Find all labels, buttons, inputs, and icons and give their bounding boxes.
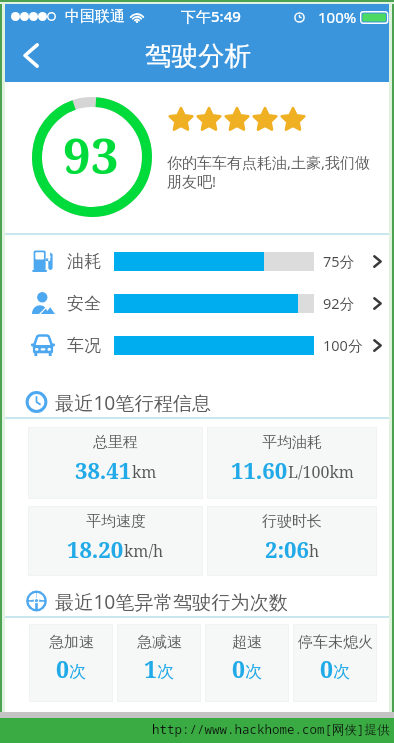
staticText: 最近10笔行程信息 — [55, 389, 212, 415]
staticText: 0 — [320, 653, 333, 684]
staticText: 100% — [318, 7, 357, 27]
staticText: 38.41 — [75, 455, 132, 485]
staticText: 100分 — [323, 335, 363, 355]
button[interactable]: 平均油耗 — [207, 427, 377, 499]
button[interactable]: 安全 — [5, 282, 389, 324]
staticText: 1 — [144, 653, 157, 684]
staticText: 停车未熄火 — [298, 633, 373, 652]
staticText: 平均速度 — [86, 512, 146, 531]
staticText: 次 — [245, 661, 262, 682]
staticText: 急加速 — [49, 633, 94, 652]
staticText: 92分 — [323, 293, 355, 313]
staticText: 75分 — [323, 251, 355, 271]
staticText: 2:06 — [265, 534, 309, 564]
staticText: 急减速 — [137, 633, 182, 652]
staticText: 0 — [56, 653, 69, 684]
staticText: 行驶时长 — [262, 512, 322, 531]
staticText: 你的车车有点耗油,土豪,我们做朋友吧! — [167, 152, 385, 192]
staticText: 次 — [333, 661, 350, 682]
button[interactable]: 油耗 — [5, 240, 389, 282]
staticText: 车况 — [67, 335, 101, 356]
staticText: 总里程 — [93, 433, 138, 452]
staticText: km — [132, 461, 157, 483]
staticText: http://www.hackhome.com[网侠]提供 — [152, 721, 390, 738]
staticText: 驾驶分析 — [145, 39, 251, 72]
button[interactable]: 停车未熄火 — [293, 624, 377, 702]
staticText: 油耗 — [67, 251, 101, 272]
button[interactable]: 行驶时长 — [207, 506, 377, 576]
button[interactable]: 急减速 — [117, 624, 201, 702]
staticText: 安全 — [67, 293, 101, 314]
staticText: 18.20 — [67, 534, 124, 564]
staticText: 次 — [69, 661, 86, 682]
button[interactable]: 总里程 — [28, 427, 203, 499]
staticText: 最近10笔异常驾驶行为次数 — [55, 588, 289, 614]
staticText: km/h — [124, 540, 164, 562]
button[interactable]: 超速 — [205, 624, 289, 702]
staticText: 0 — [232, 653, 245, 684]
button[interactable]: 平均速度 — [28, 506, 203, 576]
button[interactable]: 急加速 — [29, 624, 113, 702]
staticText: 次 — [157, 661, 174, 682]
staticText: 中国联通 — [65, 7, 125, 26]
staticText: 93 — [63, 122, 119, 189]
staticText: 平均油耗 — [262, 433, 322, 452]
staticText: h — [309, 540, 320, 562]
staticText: 超速 — [232, 633, 262, 652]
button[interactable]: 车况 — [5, 324, 389, 366]
button[interactable]: Back — [9, 29, 53, 82]
staticText: 下午5:49 — [181, 6, 241, 26]
staticText: 11.60 — [231, 455, 288, 485]
staticText: L/100km — [288, 461, 354, 483]
